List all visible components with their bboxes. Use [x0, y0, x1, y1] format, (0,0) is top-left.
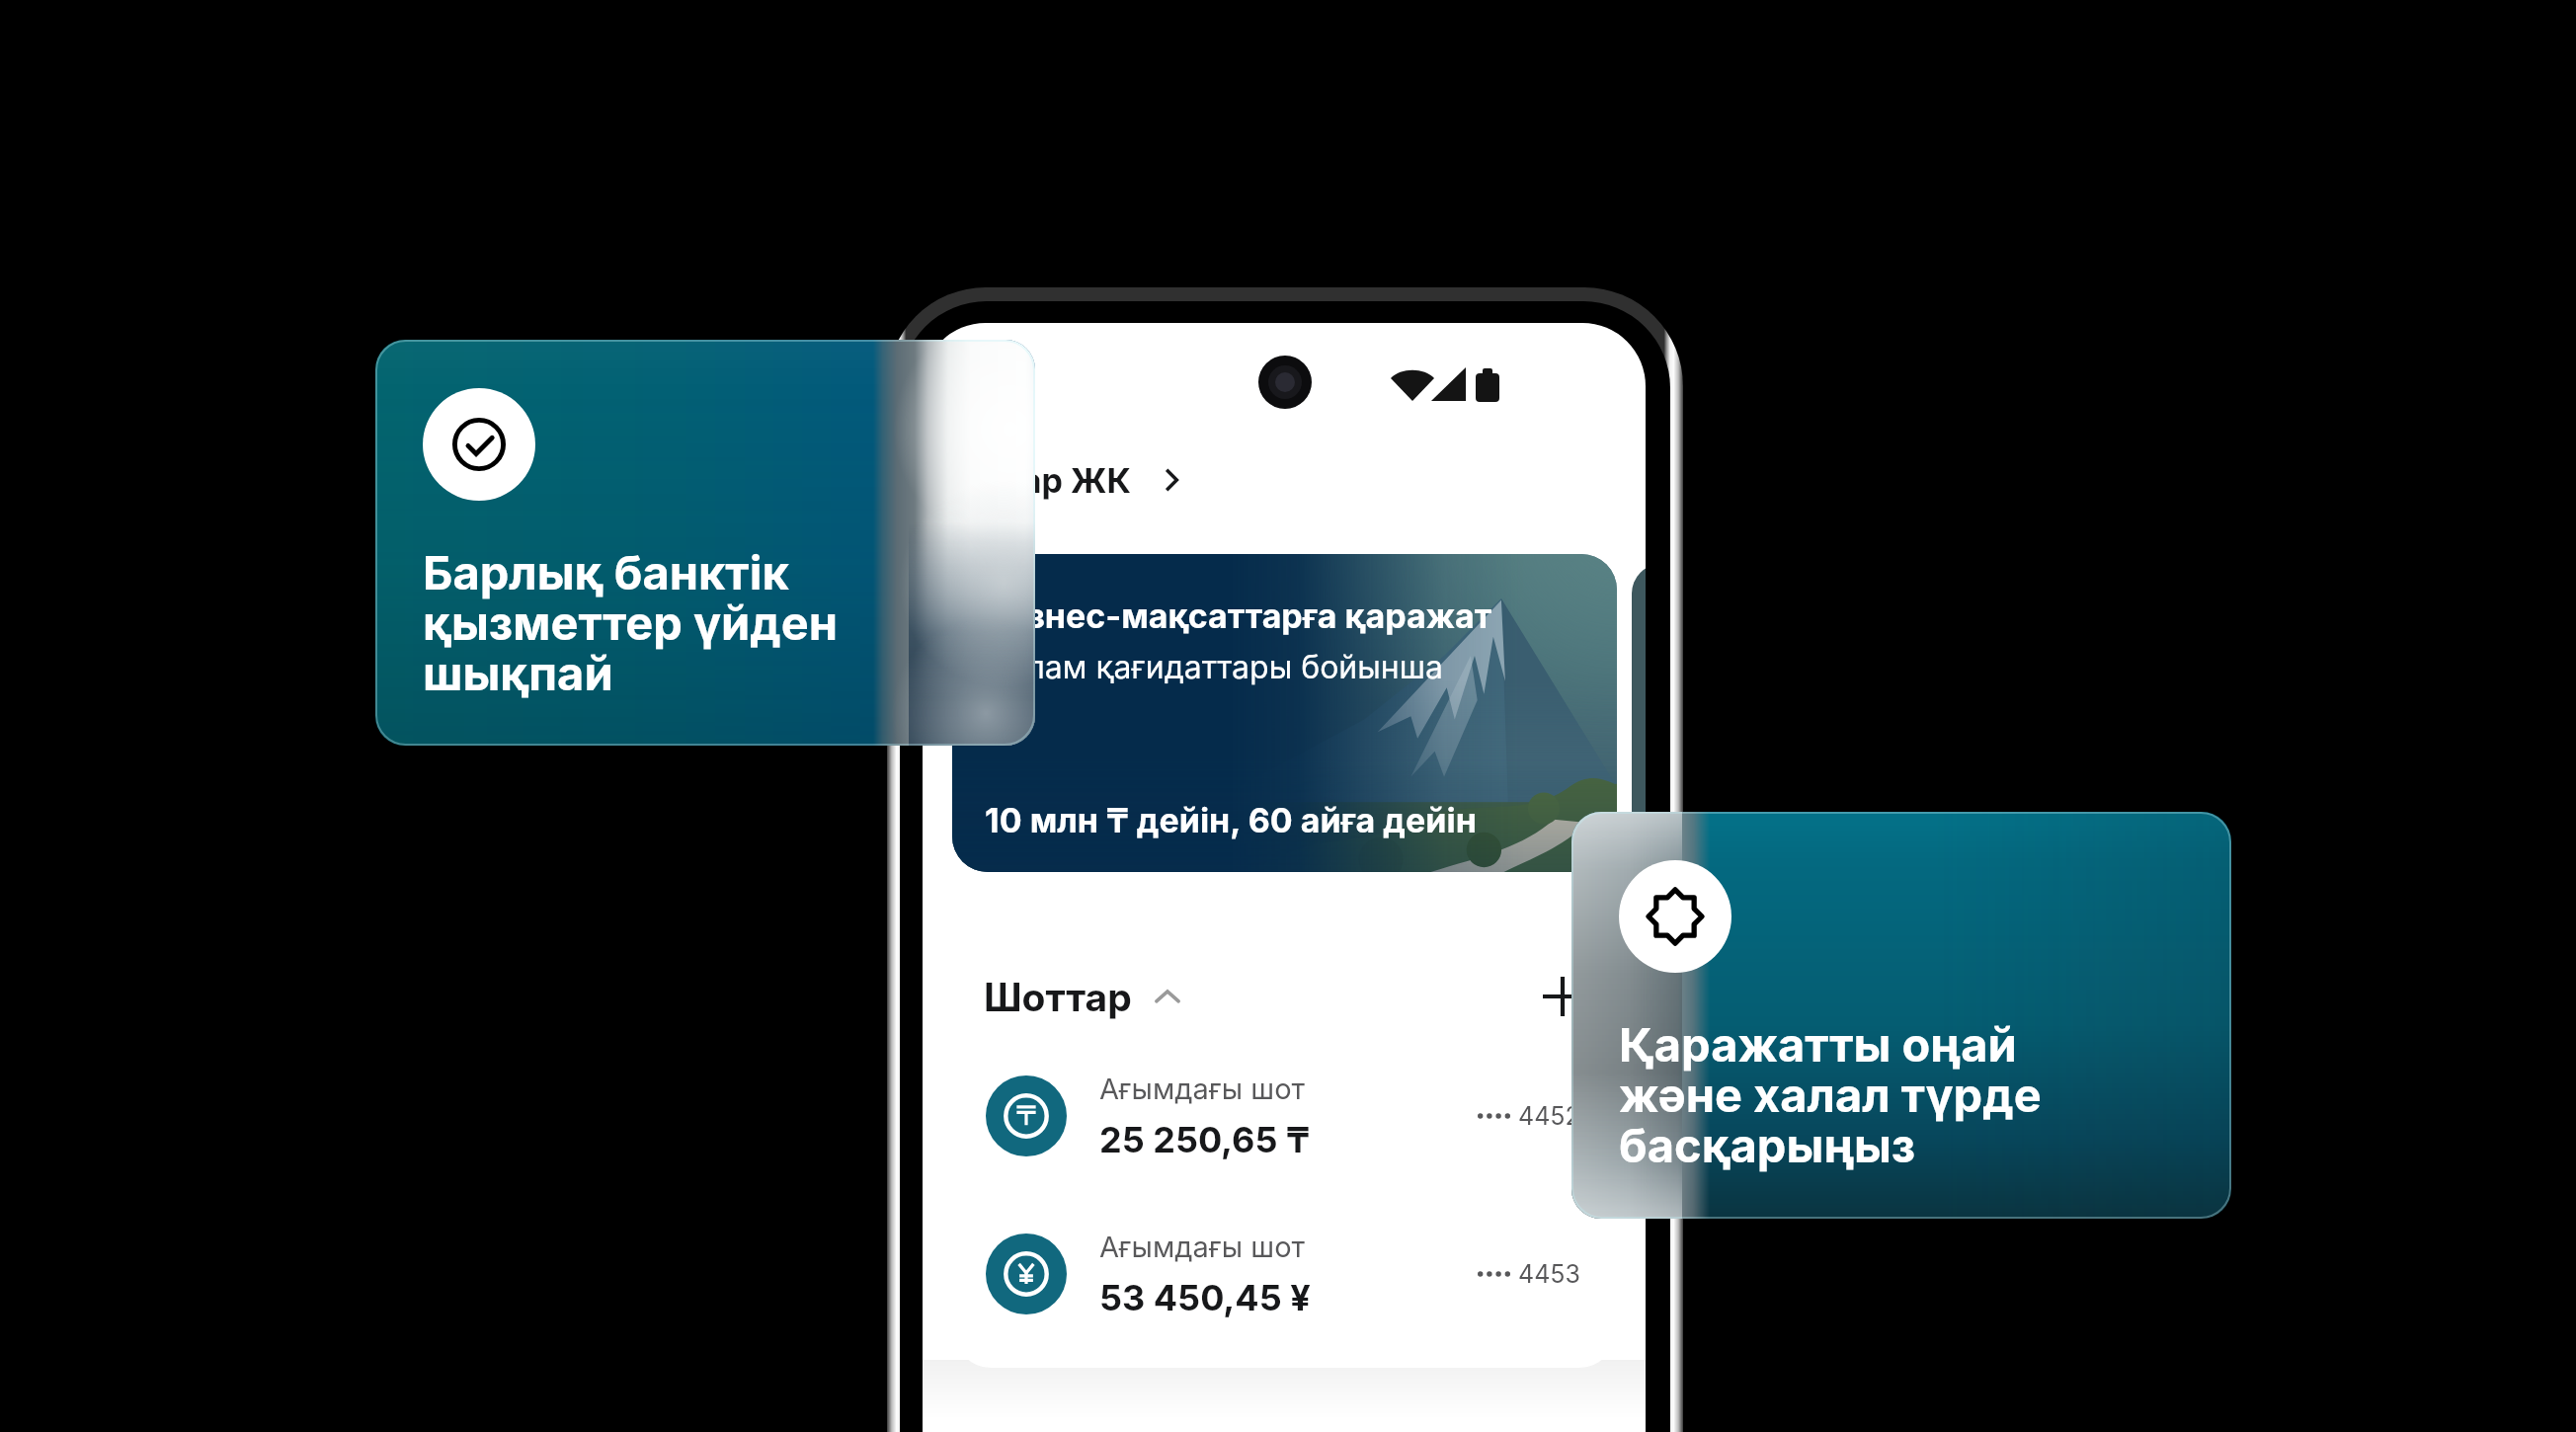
staticText: 4453: [1518, 1259, 1580, 1289]
staticText: Ағымдағы шот: [1099, 1072, 1306, 1106]
staticText: Бағдар ЖК: [943, 460, 1131, 501]
button[interactable]: Add account: [1530, 965, 1595, 1028]
button[interactable]: Шоттар: [955, 974, 1181, 1020]
staticText: Барлық банктік қызметтер үйден шықпай: [423, 544, 838, 701]
button[interactable]: Барлық банктік қызметтер үйден шықпай: [375, 340, 1035, 746]
staticText: 4452: [1518, 1101, 1580, 1131]
button[interactable]: Қаражатты оңай және халал түрде басқарың…: [1571, 812, 2231, 1219]
staticText: 25 250,65 ₸: [1099, 1118, 1311, 1161]
staticText: 53 450,45 ¥: [1099, 1276, 1311, 1319]
button[interactable]: Ағымдағы шот: [955, 1052, 1615, 1180]
button[interactable]: Ағымдағы шот: [955, 1210, 1615, 1338]
staticText: 10 млн ₸ дейін, 60 айға дейін: [985, 800, 1477, 840]
staticText: Бизнес-мақсаттарға қаражат: [985, 596, 1492, 636]
staticText: Ислам қағидаттары бойынша: [985, 648, 1444, 686]
staticText: Қаражатты оңай және халал түрде басқарың…: [1619, 1016, 2042, 1173]
staticText: Ағымдағы шот: [1099, 1230, 1306, 1264]
button[interactable]: Бизнес-мақсаттарға қаражат: [952, 554, 1617, 872]
button[interactable]: Бағдар ЖК: [923, 447, 1646, 513]
staticText: Шоттар: [984, 974, 1132, 1020]
